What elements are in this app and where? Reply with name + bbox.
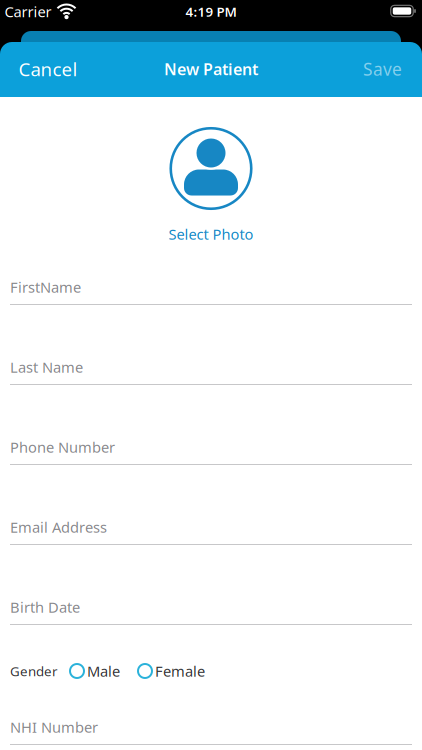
staticText: Gender: [10, 662, 58, 680]
staticText: Cancel: [18, 57, 77, 81]
staticText: NHI Number: [10, 717, 98, 737]
staticText: New Patient: [164, 58, 258, 80]
button[interactable]: Male: [69, 661, 120, 681]
staticText: Carrier: [4, 2, 51, 21]
button[interactable]: Save: [363, 57, 402, 80]
staticText: 4:19 PM: [185, 3, 236, 20]
button[interactable]: Select Photo: [168, 224, 253, 244]
staticText: FirstName: [10, 277, 81, 297]
staticText: Select Photo: [168, 224, 253, 244]
button[interactable]: Female: [137, 661, 205, 681]
staticText: Female: [155, 661, 205, 681]
staticText: Male: [87, 661, 120, 681]
staticText: Email Address: [10, 517, 107, 537]
staticText: Birth Date: [10, 597, 80, 617]
staticText: Last Name: [10, 357, 83, 377]
staticText: Save: [363, 57, 402, 80]
button[interactable]: Cancel: [18, 57, 77, 81]
button[interactable]: Select Photo: [170, 127, 252, 209]
staticText: Phone Number: [10, 437, 115, 457]
